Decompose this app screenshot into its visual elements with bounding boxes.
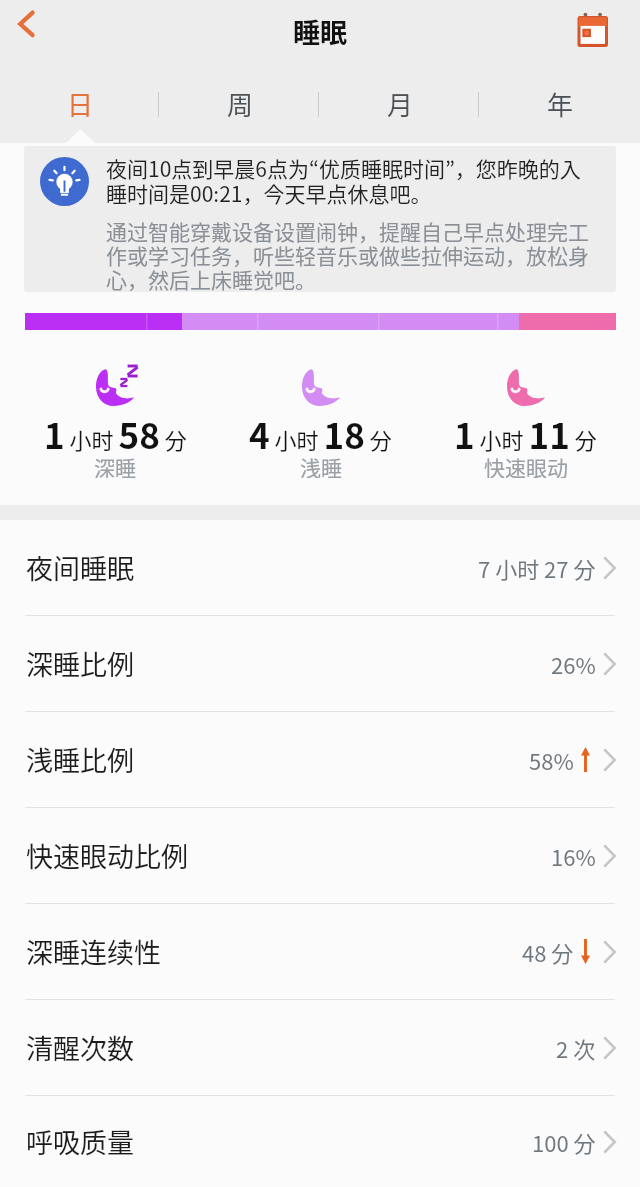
staticText: 26% xyxy=(551,648,596,680)
staticText: 周 xyxy=(227,85,254,123)
staticText: 月 xyxy=(387,85,414,123)
staticText: 7 小时 27 分 xyxy=(478,552,596,584)
staticText: 58% xyxy=(529,744,574,776)
staticText: 4 小时 18 分 xyxy=(249,408,392,452)
button[interactable]: 周 xyxy=(160,78,320,130)
staticText: 夜间睡眠 xyxy=(26,548,134,587)
button[interactable]: 日 xyxy=(0,78,160,130)
button[interactable]: Back xyxy=(2,2,46,46)
staticText: 1 小时 58 分 xyxy=(44,408,187,452)
staticText: 100 分 xyxy=(532,1126,596,1158)
staticText: 浅睡 xyxy=(300,452,342,478)
staticText: 1 小时 11 分 xyxy=(454,408,597,452)
button[interactable]: 呼吸质量 xyxy=(0,1096,640,1187)
staticText: 深睡比例 xyxy=(26,644,134,683)
staticText: 快速眼动 xyxy=(484,452,568,478)
staticText: 2 次 xyxy=(556,1032,596,1064)
staticText: 快速眼动比例 xyxy=(26,836,188,875)
button[interactable]: 年 xyxy=(480,78,640,130)
staticText: 16% xyxy=(551,840,596,872)
staticText: 睡眠 xyxy=(293,12,347,51)
button[interactable]: 深睡比例 xyxy=(0,616,640,711)
button[interactable]: 夜间睡眠 xyxy=(0,520,640,615)
staticText: 浅睡比例 xyxy=(26,740,134,779)
button[interactable]: 快速眼动比例 xyxy=(0,808,640,903)
staticText: 年 xyxy=(547,85,574,123)
button[interactable]: 深睡连续性 xyxy=(0,904,640,999)
staticText: 呼吸质量 xyxy=(26,1122,134,1161)
button[interactable]: Calendar xyxy=(576,8,616,48)
staticText: 通过智能穿戴设备设置闹钟，提醒自己早点处理完工 作或学习任务，听些轻音乐或做些拉… xyxy=(106,216,589,292)
button[interactable]: 清醒次数 xyxy=(0,1000,640,1095)
staticText: 清醒次数 xyxy=(26,1028,134,1067)
staticText: 48 分 xyxy=(522,936,574,968)
staticText: 夜间10点到早晨6点为“优质睡眠时间”，您昨晚的入 睡时间是00:21，今天早点… xyxy=(106,153,581,208)
staticText: 日 xyxy=(67,85,94,123)
button[interactable]: 浅睡比例 xyxy=(0,712,640,807)
button[interactable]: 月 xyxy=(320,78,480,130)
staticText: 深睡连续性 xyxy=(26,932,161,971)
staticText: 深睡 xyxy=(94,452,136,478)
